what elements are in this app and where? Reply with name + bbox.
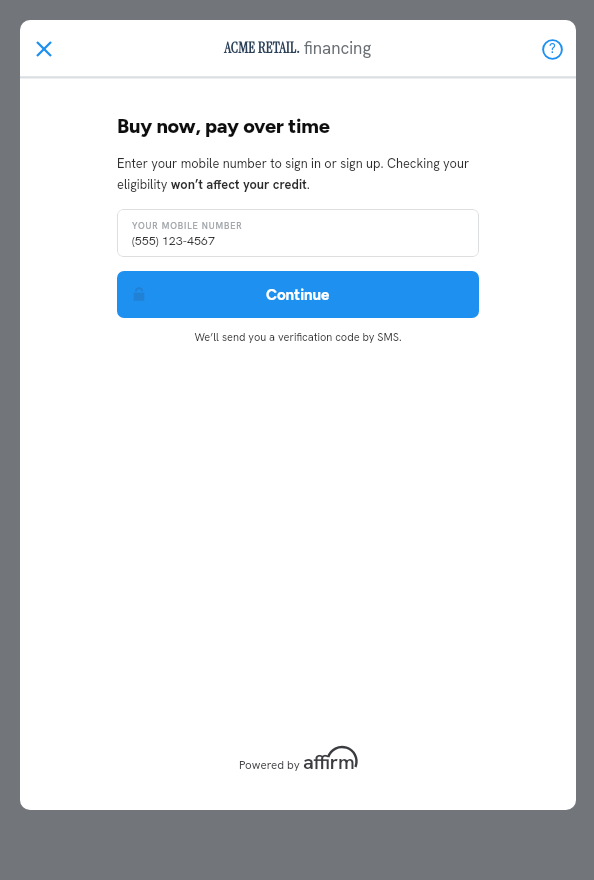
button[interactable]: Close bbox=[21, 26, 67, 72]
button[interactable]: YOUR MOBILE NUMBER bbox=[117, 209, 479, 257]
staticText: ACME RETAIL. bbox=[224, 38, 300, 58]
staticText: Enter your mobile number to sign in or s… bbox=[117, 155, 479, 193]
staticText: affirm bbox=[303, 749, 355, 775]
staticText: ? bbox=[549, 40, 556, 57]
staticText: YOUR MOBILE NUMBER bbox=[132, 220, 243, 232]
staticText: (555) 123-4567 bbox=[132, 232, 215, 248]
staticText: financing bbox=[304, 37, 372, 59]
staticText: Continue bbox=[266, 286, 330, 304]
staticText: We’ll send you a verification code by SM… bbox=[117, 330, 479, 344]
staticText: Buy now, pay over time bbox=[117, 114, 330, 138]
button[interactable]: Continue bbox=[117, 271, 479, 318]
button[interactable]: Help bbox=[532, 29, 572, 69]
staticText: Powered by bbox=[239, 757, 300, 772]
